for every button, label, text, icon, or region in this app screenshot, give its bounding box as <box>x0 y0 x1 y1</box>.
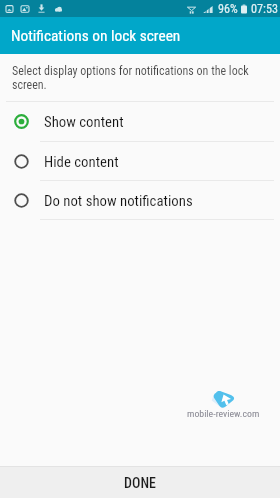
staticText: Show content <box>44 113 124 130</box>
staticText: mobile-review.com <box>187 408 260 419</box>
staticText: Select display options for notifications… <box>12 64 254 92</box>
staticText: Do not show notifications <box>44 192 193 209</box>
staticText: 07:53 <box>251 2 278 16</box>
button[interactable]: Do not show notifications <box>0 181 280 219</box>
button[interactable]: Hide content <box>0 142 280 180</box>
staticText: Notifications on lock screen <box>11 27 181 45</box>
staticText: Hide content <box>44 153 119 170</box>
button[interactable]: DONE <box>0 467 280 498</box>
staticText: 96% <box>218 2 238 16</box>
button[interactable]: Show content <box>0 102 280 141</box>
staticText: DONE <box>124 475 156 491</box>
